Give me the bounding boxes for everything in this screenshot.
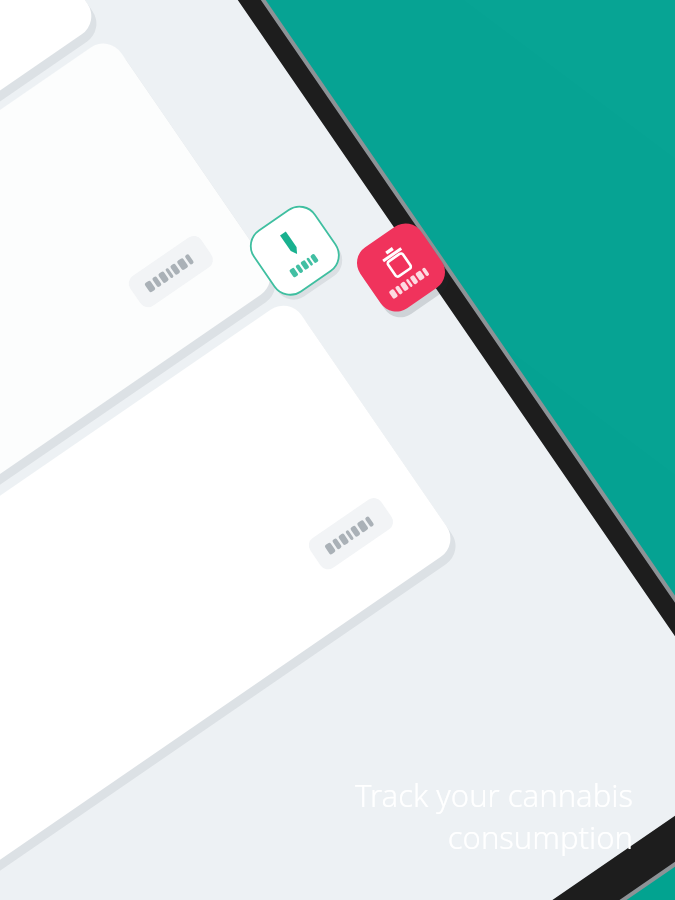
staticText: Track your cannabis bbox=[355, 774, 633, 816]
staticText: consumption bbox=[447, 816, 633, 858]
button[interactable]: Consumption history tablet preview bbox=[0, 0, 675, 900]
